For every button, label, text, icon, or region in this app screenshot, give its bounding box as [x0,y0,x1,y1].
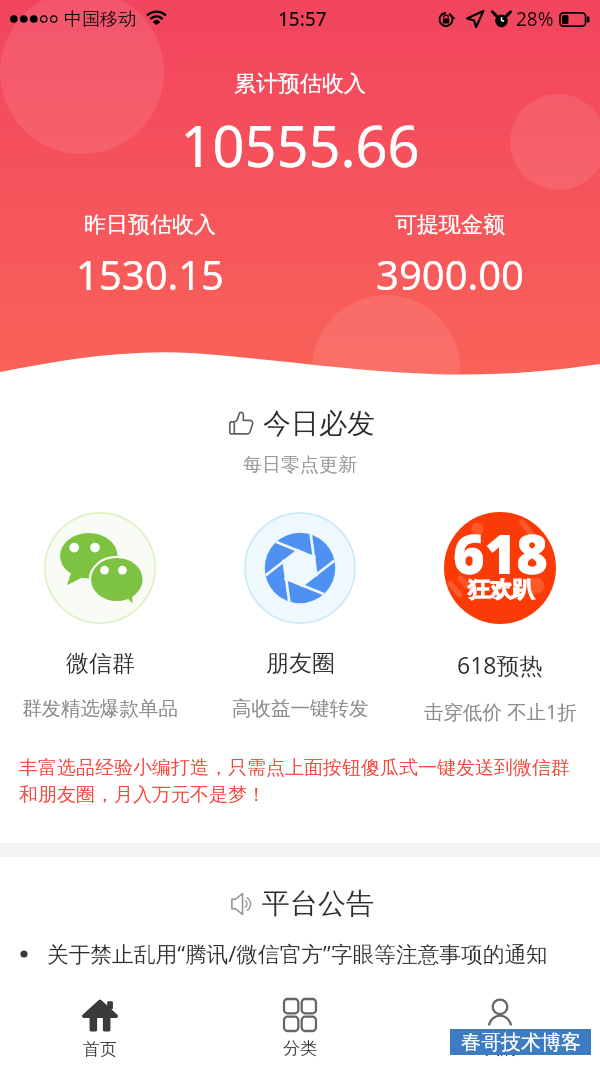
button[interactable]: 首页 [0,986,200,1066]
staticText: 和朋友圈，月入万元不是梦！ [19,783,266,807]
staticText: 关于禁止乱用“腾讯/微信官方”字眼等注意事项的通知 [47,939,548,969]
staticText: 平台公告 [262,886,374,921]
staticText: 我的 [483,1038,517,1059]
staticText: 高收益一键转发 [232,696,369,721]
staticText: 10555.66 [0,107,600,183]
staticText: 中国移动 [64,8,136,31]
button[interactable]: 我的 [400,986,600,1066]
staticText: 分类 [283,1038,317,1059]
button[interactable]: WeChat groups [0,512,200,721]
staticText: 狂欢趴 [468,576,534,604]
staticText: 1530.15 [76,247,224,301]
staticText: 首页 [83,1039,117,1060]
button[interactable]: 关于禁止乱用“腾讯/微信官方”字眼等注意事项的通知 [0,939,600,969]
staticText: 昨日预估收入 [84,211,216,239]
staticText: 群发精选爆款单品 [22,696,178,721]
staticText: 丰富选品经验小编打造，只需点上面按钮傻瓜式一键发送到微信群 [19,756,570,780]
staticText: 618 [453,516,548,590]
staticText: 15:57 [278,6,327,32]
staticText: 春哥技术博客 [461,1030,581,1055]
button[interactable]: 618 preheat [400,512,600,725]
staticText: 618预热 [457,649,543,680]
button[interactable]: 分类 [200,986,400,1066]
staticText: 击穿低价 不止1折 [424,698,577,725]
staticText: 可提现金额 [395,211,505,239]
staticText: 微信群 [66,649,135,678]
button[interactable]: Moments [200,512,400,721]
staticText: 累计预估收入 [0,70,600,98]
staticText: 每日零点更新 [243,453,357,477]
staticText: 今日必发 [263,406,375,441]
staticText: 3900.00 [376,247,524,301]
staticText: 朋友圈 [266,649,335,678]
staticText: 28% [516,6,554,32]
